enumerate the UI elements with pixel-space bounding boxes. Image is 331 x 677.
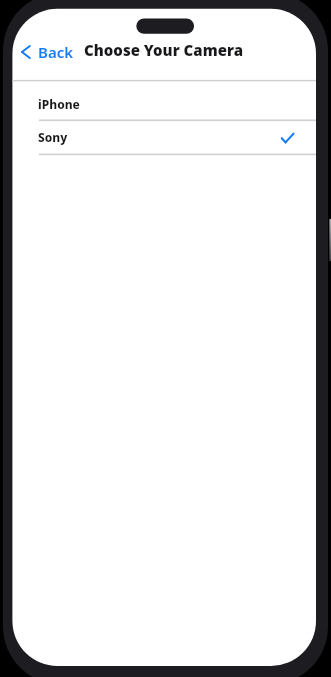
button[interactable]: iPhone	[12, 88, 316, 120]
button[interactable]: Back	[21, 42, 74, 62]
other: Selected	[281, 133, 294, 143]
staticText: Sony	[38, 129, 68, 145]
staticText: Choose Your Camera	[84, 40, 244, 60]
staticText: iPhone	[38, 96, 80, 112]
other: Back	[21, 45, 31, 59]
staticText: Back	[38, 42, 74, 62]
button[interactable]: Sony	[12, 121, 316, 153]
